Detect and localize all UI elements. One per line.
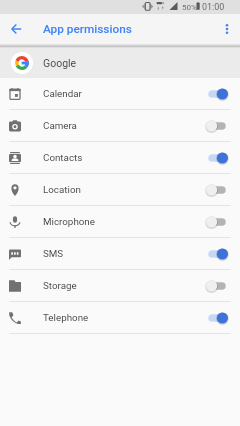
staticText: Contacts xyxy=(43,152,83,163)
button[interactable]: Microphone xyxy=(0,206,240,237)
button[interactable]: Location xyxy=(0,174,240,205)
button[interactable]: Location permission xyxy=(204,178,230,202)
staticText: Telephone xyxy=(43,312,89,323)
button[interactable]: Contacts permission xyxy=(204,146,230,170)
staticText: Google xyxy=(43,57,77,69)
button[interactable]: Calendar xyxy=(0,78,240,109)
button[interactable]: Contacts xyxy=(0,142,240,173)
staticText: Calendar xyxy=(43,88,82,99)
staticText: Location xyxy=(43,184,81,195)
staticText: Microphone xyxy=(43,216,95,227)
button[interactable]: Telephone xyxy=(0,302,240,333)
button[interactable]: Storage xyxy=(0,270,240,301)
button[interactable]: Camera xyxy=(0,110,240,141)
staticText: SMS xyxy=(43,248,64,259)
button[interactable]: Storage permission xyxy=(204,274,230,298)
button[interactable]: Telephone permission xyxy=(204,306,230,330)
staticText: Storage xyxy=(43,280,77,291)
button[interactable]: Google xyxy=(0,44,240,78)
button[interactable]: More options xyxy=(214,14,240,44)
button[interactable]: SMS permission xyxy=(204,242,230,266)
button[interactable]: Microphone permission xyxy=(204,210,230,234)
staticText: 01:00 xyxy=(202,2,225,12)
staticText: App permissions xyxy=(43,22,132,36)
staticText: Camera xyxy=(43,120,77,131)
button[interactable]: SMS xyxy=(0,238,240,269)
button[interactable]: Navigate up xyxy=(0,14,33,44)
button[interactable]: Calendar permission xyxy=(204,82,230,106)
button[interactable]: Camera permission xyxy=(204,114,230,138)
staticText: 50% xyxy=(182,3,197,12)
